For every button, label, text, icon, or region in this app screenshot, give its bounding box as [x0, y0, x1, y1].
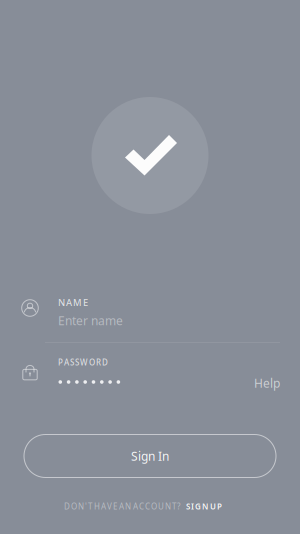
staticText: D O N ' T H A V E A N A C C O U N T ?: [64, 501, 180, 512]
staticText: Enter name: [58, 312, 123, 328]
button[interactable]: Help: [254, 377, 280, 389]
staticText: S I G N U P: [186, 501, 222, 512]
button[interactable]: Sign In: [24, 434, 276, 477]
staticText: P A S S W O R D: [58, 357, 108, 368]
button[interactable]: D O N ' T H A V E A N A C C O U N T ?: [64, 501, 240, 512]
staticText: N A M E: [58, 296, 88, 309]
staticText: Help: [254, 375, 280, 391]
staticText: Sign In: [131, 448, 169, 464]
